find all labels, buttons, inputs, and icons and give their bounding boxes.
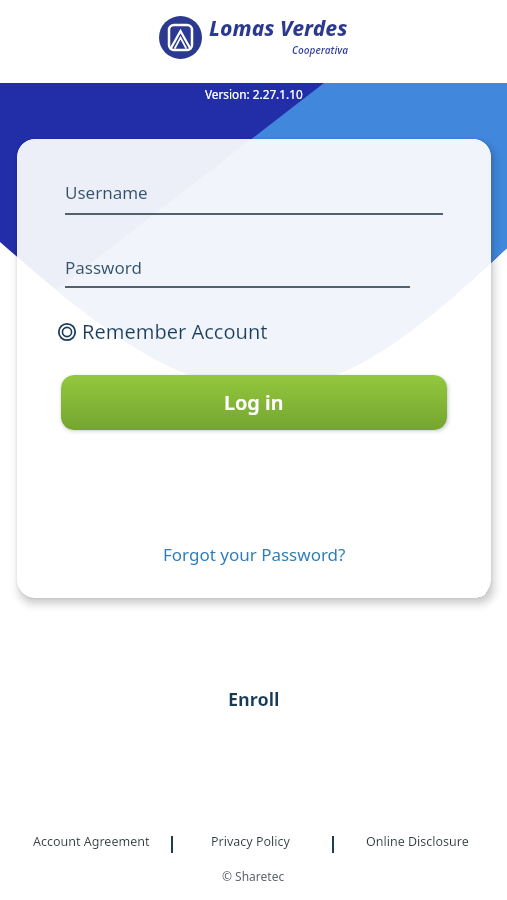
button[interactable]: Enroll [228,687,280,712]
staticText: © Sharetec [222,868,285,884]
staticText: Version: 2.27.1.10 [205,86,303,102]
button[interactable]: Log in [61,375,447,430]
staticText: Log in [224,389,284,416]
button[interactable]: Remember Account [58,318,268,345]
staticText: Remember Account [82,318,268,345]
staticText: Cooperativa [292,43,348,57]
staticText: Lomas Verdes [209,14,348,43]
staticText: Password [65,256,142,279]
button[interactable]: Forgot your Password? [163,543,346,566]
button[interactable]: Privacy Policy [211,833,290,850]
staticText: Username [65,181,148,204]
button[interactable]: Account Agreement [33,833,150,850]
button[interactable]: Online Disclosure [366,833,469,850]
